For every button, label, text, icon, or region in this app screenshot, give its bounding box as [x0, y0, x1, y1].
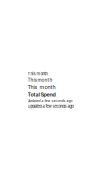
staticText: This month	[27, 71, 47, 76]
staticText: Updated a few seconds ago	[27, 104, 73, 109]
staticText: This month	[27, 77, 52, 83]
staticText: This month	[27, 84, 55, 90]
staticText: Updated a few seconds ago	[27, 99, 72, 103]
staticText: Total Spend	[27, 91, 55, 98]
